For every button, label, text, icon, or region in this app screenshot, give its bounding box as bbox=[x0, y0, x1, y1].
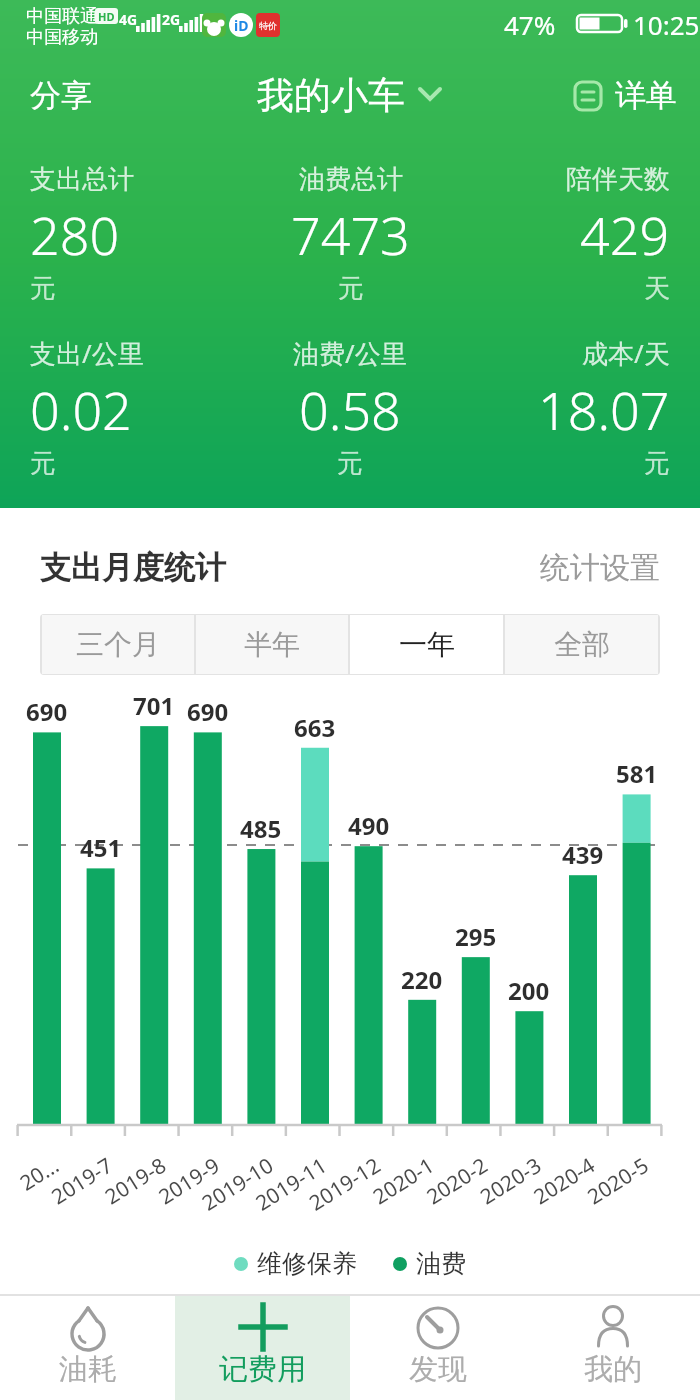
staticText: 支出月度统计 bbox=[40, 548, 226, 587]
staticText: 天 bbox=[644, 272, 670, 305]
staticText: 我的 bbox=[584, 1351, 642, 1388]
staticText: 发现 bbox=[409, 1351, 467, 1388]
staticText: 元 bbox=[338, 272, 364, 305]
staticText: 陪伴天数 bbox=[566, 163, 670, 196]
staticText: 280 bbox=[30, 199, 120, 270]
staticText: 三个月 bbox=[76, 627, 160, 662]
staticText: 7473 bbox=[291, 199, 410, 270]
staticText: 690 bbox=[26, 695, 68, 728]
staticText: 元 bbox=[30, 272, 56, 305]
staticText: HD bbox=[98, 9, 115, 24]
staticText: 663 bbox=[294, 711, 336, 744]
button[interactable]: 详单 bbox=[573, 76, 677, 115]
staticText: 439 bbox=[562, 838, 604, 871]
staticText: 中国移动 bbox=[26, 26, 98, 49]
staticText: 295 bbox=[455, 920, 497, 953]
staticText: 429 bbox=[580, 199, 670, 270]
staticText: 一年 bbox=[399, 627, 455, 662]
staticText: 我的小车 bbox=[257, 72, 405, 119]
staticText: 油耗 bbox=[59, 1351, 117, 1388]
staticText: 490 bbox=[348, 809, 390, 842]
staticText: 451 bbox=[80, 831, 122, 864]
staticText: 0.02 bbox=[30, 374, 132, 445]
button[interactable]: 半年 bbox=[196, 615, 348, 674]
staticText: 中国联通 bbox=[26, 5, 98, 28]
staticText: 690 bbox=[187, 695, 229, 728]
button[interactable]: 三个月 bbox=[42, 615, 194, 674]
staticText: 220 bbox=[401, 963, 443, 996]
staticText: 47% bbox=[504, 7, 556, 42]
staticText: 分享 bbox=[30, 76, 92, 115]
staticText: 2G bbox=[162, 10, 181, 29]
staticText: 支出总计 bbox=[30, 163, 134, 196]
staticText: 详单 bbox=[615, 76, 677, 115]
staticText: 0.58 bbox=[299, 374, 401, 445]
staticText: 485 bbox=[240, 812, 282, 845]
staticText: 581 bbox=[616, 757, 658, 790]
button[interactable]: 分享 bbox=[30, 76, 92, 115]
button[interactable]: 一年 bbox=[350, 615, 503, 674]
button[interactable]: 我的 bbox=[525, 1296, 700, 1400]
staticText: 统计设置 bbox=[540, 549, 660, 587]
staticText: 油费/公里 bbox=[293, 335, 407, 371]
staticText: 元 bbox=[337, 447, 363, 480]
staticText: 701 bbox=[133, 689, 175, 722]
staticText: 4G bbox=[119, 10, 138, 29]
staticText: 油费 bbox=[416, 1248, 466, 1279]
staticText: 全部 bbox=[554, 627, 610, 662]
staticText: 支出/公里 bbox=[30, 335, 144, 371]
staticText: 10:25 bbox=[633, 7, 700, 42]
button[interactable]: 发现 bbox=[350, 1296, 525, 1400]
button[interactable]: 统计设置 bbox=[540, 549, 660, 587]
staticText: 特价 bbox=[259, 20, 277, 31]
button[interactable]: 记费用 bbox=[175, 1296, 350, 1400]
staticText: 元 bbox=[644, 447, 670, 480]
button[interactable]: 我的小车 bbox=[257, 70, 443, 120]
button[interactable]: 全部 bbox=[505, 615, 658, 674]
staticText: 半年 bbox=[244, 627, 300, 662]
staticText: 18.07 bbox=[538, 374, 670, 445]
staticText: 200 bbox=[508, 974, 550, 1007]
staticText: 成本/天 bbox=[582, 335, 670, 371]
staticText: iD bbox=[234, 16, 249, 35]
staticText: 油费总计 bbox=[299, 163, 403, 196]
staticText: 记费用 bbox=[219, 1351, 306, 1388]
button[interactable]: 油耗 bbox=[0, 1296, 175, 1400]
staticText: 元 bbox=[30, 447, 56, 480]
staticText: 维修保养 bbox=[257, 1248, 357, 1279]
